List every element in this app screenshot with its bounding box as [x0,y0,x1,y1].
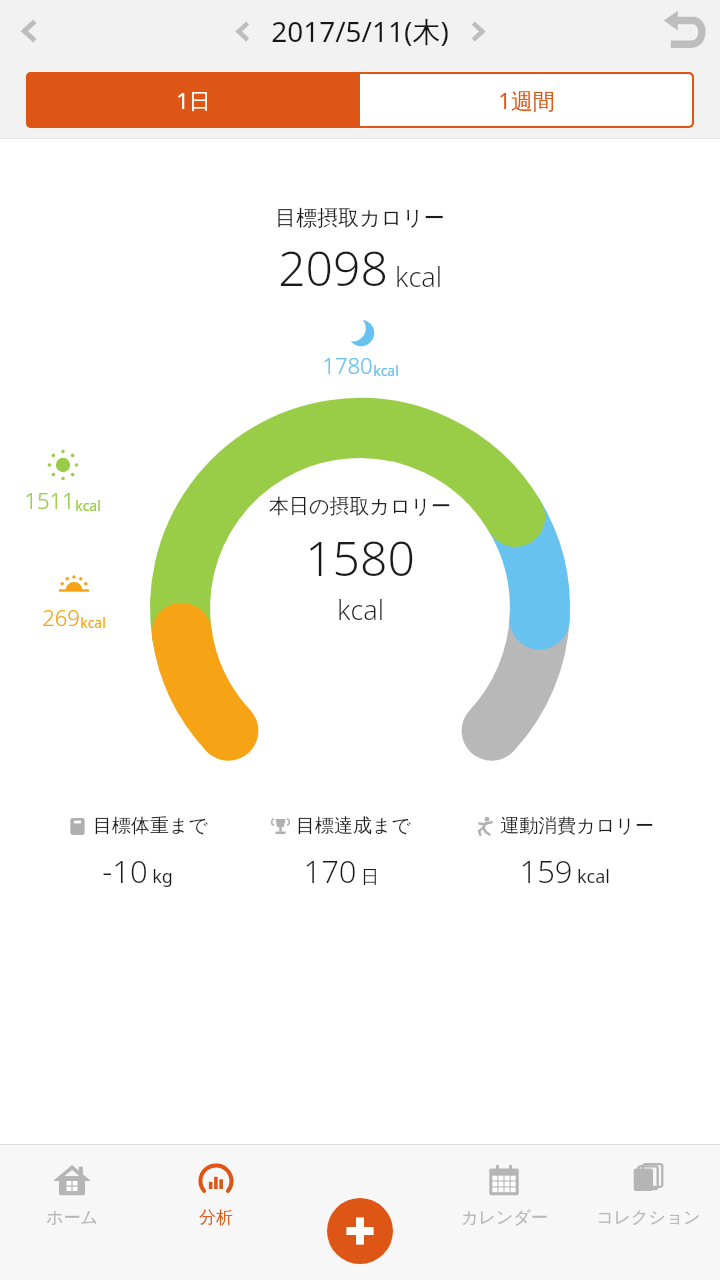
button[interactable]: 追加 [327,1198,393,1264]
staticText: 269 [42,602,80,632]
button[interactable]: 1日 [26,72,360,128]
button[interactable]: 分析 [144,1158,288,1230]
staticText: 目標達成まで [296,814,411,838]
staticText: kcal [577,864,610,889]
staticText: 目標摂取カロリー [275,205,445,231]
staticText: ホーム [46,1207,98,1228]
staticText: 2017/5/11(木) [271,12,449,50]
staticText: kg [152,864,173,889]
staticText: カレンダー [461,1207,548,1228]
staticText: 今日 [675,26,693,37]
button[interactable]: 戻る [6,7,54,55]
staticText: 本日の摂取カロリー [269,494,451,519]
button[interactable]: コレクション [576,1158,720,1230]
staticText: 1511 [24,485,75,515]
staticText: コレクション [596,1207,701,1228]
button[interactable]: 次の日 [455,9,499,53]
staticText: kcal [337,591,384,628]
button[interactable]: ホーム [0,1158,144,1230]
staticText: 日 [361,866,379,889]
staticText: -10 [102,850,148,892]
staticText: 159 [519,850,573,892]
button[interactable]: 目標体重まで [65,814,210,892]
staticText: 170 [303,850,357,892]
staticText: kcal [80,613,106,632]
staticText: 目標体重まで [93,814,208,838]
staticText: 1週間 [498,85,555,115]
staticText: 分析 [199,1207,233,1228]
staticText: 運動消費カロリー [500,814,654,838]
button[interactable]: カレンダー [432,1158,576,1230]
button[interactable]: 1週間 [360,74,692,126]
staticText: 1日 [176,85,211,115]
button[interactable]: 前の日 [221,9,265,53]
staticText: 2098 [278,235,388,300]
staticText: kcal [395,258,442,295]
staticText: 1780 [322,350,373,380]
staticText: 1580 [305,525,415,590]
button[interactable]: 今日 [658,5,710,57]
button[interactable]: 運動消費カロリー [472,814,656,892]
button[interactable]: 目標達成まで [268,814,413,892]
staticText: kcal [373,361,399,380]
staticText: kcal [75,496,101,515]
